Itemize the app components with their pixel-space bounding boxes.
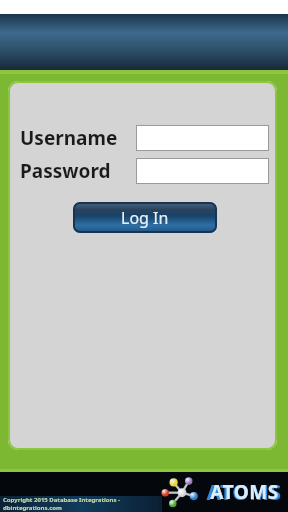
staticText: Copyright 2015 Database Integrations - d… bbox=[3, 496, 162, 512]
staticText: ATOMS bbox=[206, 478, 282, 507]
staticText: Password bbox=[20, 158, 111, 184]
button[interactable] bbox=[136, 158, 269, 184]
button[interactable] bbox=[136, 125, 269, 151]
staticText: Username bbox=[20, 125, 118, 151]
button[interactable]: ATOMS logo bbox=[161, 475, 282, 509]
staticText: Log In bbox=[121, 207, 169, 229]
button[interactable]: Log In bbox=[73, 202, 217, 233]
staticText: ATOMS bbox=[210, 479, 279, 505]
